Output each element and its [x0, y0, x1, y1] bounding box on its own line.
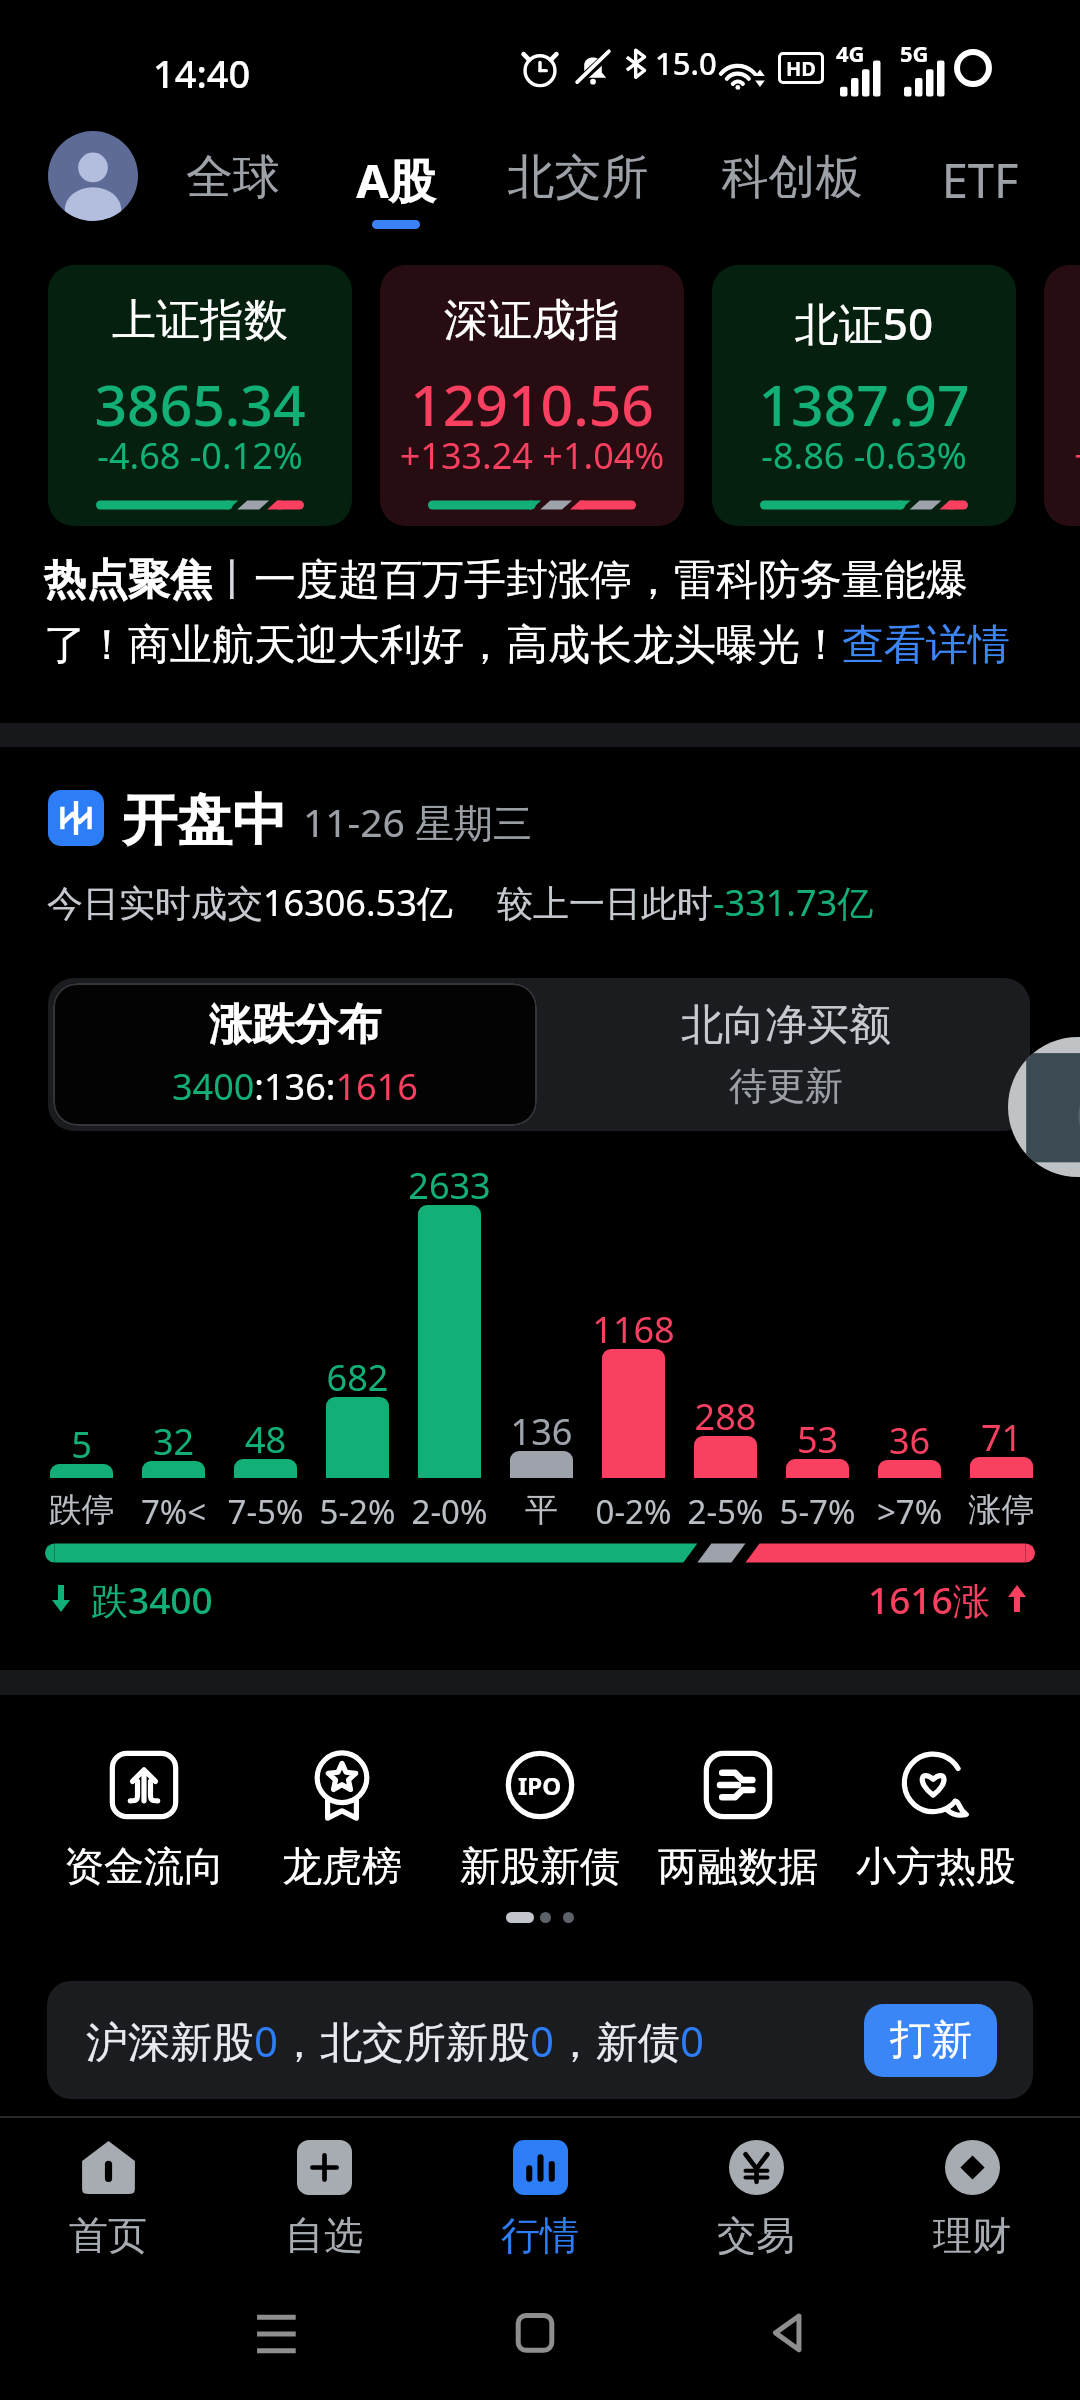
button[interactable]: A股	[331, 130, 461, 236]
staticText: 深证成指	[380, 293, 684, 348]
button[interactable]: 上证指数	[48, 265, 352, 526]
staticText: 首页	[0, 2211, 216, 2260]
button[interactable]: Assistant	[1008, 1037, 1080, 1177]
staticText: 0-2%	[567, 1489, 700, 1534]
staticText: 1168	[577, 1305, 690, 1354]
staticText: 11-26 星期三	[303, 795, 532, 848]
staticText: 北证50	[712, 293, 1016, 353]
button[interactable]: 两融数据	[639, 1749, 837, 1891]
button[interactable]: ETF	[905, 130, 1055, 236]
staticText: 涨跌分布	[209, 998, 381, 1052]
button[interactable]: 资金流向	[45, 1749, 243, 1891]
button[interactable]: Profile	[48, 131, 138, 221]
staticText: 1616涨	[868, 1574, 990, 1625]
staticText: 136	[485, 1407, 598, 1456]
button[interactable]: 北向净买额	[542, 978, 1030, 1131]
button[interactable]: 北交所	[478, 130, 678, 236]
button[interactable]: 北证50	[712, 265, 1016, 526]
button[interactable]: 创业板指	[1044, 265, 1080, 526]
staticText: 53	[761, 1415, 874, 1464]
staticText: 3865.34	[48, 365, 352, 443]
staticText: 48	[209, 1415, 322, 1464]
button[interactable]: 行情	[432, 2122, 648, 2272]
staticText: 12910.56	[380, 365, 684, 443]
staticText: 平	[475, 1489, 608, 1531]
staticText: 行情	[432, 2211, 648, 2260]
staticText: 开盘中	[122, 786, 287, 855]
staticText: ETF	[905, 148, 1055, 212]
staticText: 32	[117, 1417, 230, 1466]
staticText: 3400:136:1616	[172, 1062, 418, 1111]
button[interactable]: 科创板	[692, 130, 892, 236]
staticText: >7%	[843, 1489, 976, 1534]
button[interactable]: Home	[507, 2306, 563, 2362]
staticText: 2-0%	[383, 1489, 516, 1534]
staticText: -8.86 -0.63%	[712, 431, 1016, 480]
staticText: 资金流向	[45, 1841, 243, 1891]
staticText: 今日实时成交16306.53亿	[47, 878, 453, 927]
staticText: 上证指数	[48, 293, 352, 348]
button[interactable]: IPO	[441, 1749, 639, 1891]
button[interactable]: 热点聚焦丨一度超百万手封涨停，雷科防务量能爆了！商业航天迎大利好，高成长龙头曝光…	[44, 554, 1044, 671]
staticText: 跌停	[15, 1489, 148, 1531]
button[interactable]: Back	[762, 2306, 818, 2362]
staticText: 5	[25, 1420, 138, 1469]
staticText: 5-7%	[751, 1489, 884, 1534]
staticText: 沪深新股0，北交所新股0，新债0	[86, 2012, 705, 2069]
staticText: -4.68 -0.12%	[48, 431, 352, 480]
staticText: 全球	[153, 148, 313, 207]
button[interactable]: 沪深新股0，北交所新股0，新债0	[47, 1981, 1033, 2099]
staticText: 涨停	[935, 1489, 1068, 1531]
staticText: 14:40	[153, 47, 251, 99]
staticText: 打新	[890, 2015, 972, 2067]
staticText: 跌3400	[91, 1574, 213, 1625]
staticText: 4G	[836, 38, 865, 68]
staticText: 682	[301, 1353, 414, 1402]
staticText: 小方热股	[837, 1841, 1035, 1891]
button[interactable]: 深证成指	[380, 265, 684, 526]
button[interactable]: 全球	[153, 130, 313, 236]
staticText: 理财	[864, 2211, 1080, 2260]
staticText: 2-5%	[659, 1489, 792, 1534]
staticText: 5-2%	[291, 1489, 424, 1534]
staticText: 5G	[900, 38, 929, 68]
button[interactable]: 首页	[0, 2122, 216, 2272]
button[interactable]: 打新	[864, 2004, 997, 2077]
button[interactable]: 涨跌分布	[53, 983, 537, 1126]
button[interactable]: 自选	[216, 2122, 432, 2272]
staticText: 北向净买额	[681, 999, 891, 1052]
staticText: A股	[331, 148, 461, 212]
staticText: 自选	[216, 2211, 432, 2260]
staticText: 较上一日此时-331.73亿	[497, 878, 874, 927]
staticText: 北交所	[478, 148, 678, 207]
staticText: 7%<	[107, 1489, 240, 1534]
staticText: 科创板	[692, 148, 892, 207]
button[interactable]: 交易	[648, 2122, 864, 2272]
staticText: 交易	[648, 2211, 864, 2260]
button[interactable]: Recent apps	[247, 2306, 303, 2362]
staticText: 新股新债	[441, 1841, 639, 1891]
staticText: 71	[945, 1413, 1058, 1462]
staticText: 36	[853, 1416, 966, 1465]
staticText: 2633	[393, 1161, 506, 1210]
button[interactable]: 理财	[864, 2122, 1080, 2272]
staticText: IPO	[518, 1769, 562, 1802]
staticText: 待更新	[729, 1062, 843, 1110]
staticText: 龙虎榜	[243, 1841, 441, 1891]
staticText: 15.0	[655, 42, 717, 84]
staticText: +12.44 +0.41%	[1044, 431, 1080, 480]
staticText: 1387.97	[712, 365, 1016, 443]
staticText: 热点聚焦丨一度超百万手封涨停，雷科防务量能爆了！商业航天迎大利好，高成长龙头曝光…	[44, 554, 1044, 671]
button[interactable]: 小方热股	[837, 1749, 1035, 1891]
staticText: 两融数据	[639, 1841, 837, 1891]
button[interactable]: 龙虎榜	[243, 1749, 441, 1891]
staticText: 7-5%	[199, 1489, 332, 1534]
staticText: HD	[786, 55, 816, 82]
staticText: +133.24 +1.04%	[380, 431, 684, 480]
staticText: 288	[669, 1392, 782, 1441]
